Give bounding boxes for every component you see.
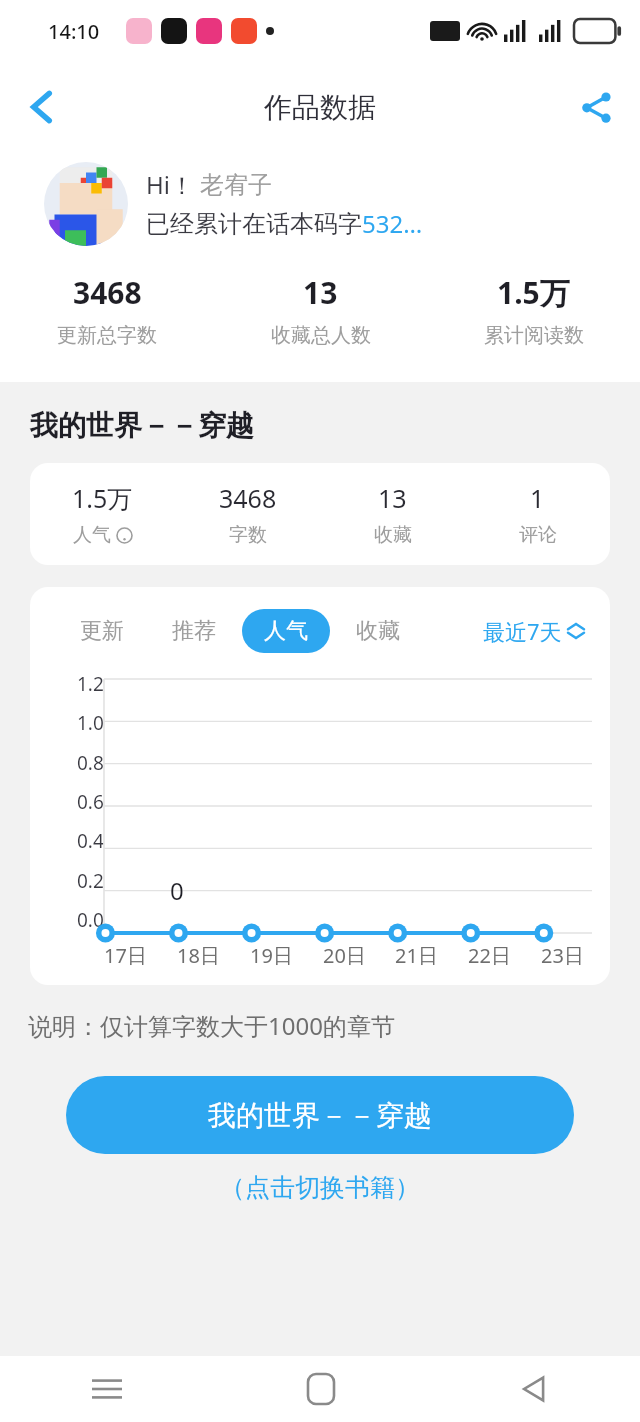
staticText: 0 bbox=[170, 874, 184, 907]
button[interactable]: Back bbox=[427, 1356, 640, 1422]
staticText: 532… bbox=[362, 207, 423, 240]
button[interactable]: 最近7天 bbox=[479, 612, 588, 650]
staticText: 14:10 bbox=[48, 18, 100, 45]
button[interactable]: Share bbox=[566, 77, 626, 137]
staticText: 3468 bbox=[73, 272, 142, 313]
staticText: 0.0 bbox=[77, 907, 104, 933]
staticText: 0.4 bbox=[77, 828, 104, 854]
staticText: 23日 bbox=[541, 942, 584, 969]
staticText: 我的世界－－穿越 bbox=[30, 408, 254, 443]
staticText: 3468 bbox=[219, 481, 277, 515]
staticText: 收藏总人数 bbox=[271, 323, 371, 348]
staticText: 1.5万 bbox=[497, 272, 570, 313]
staticText: 作品数据 bbox=[264, 90, 376, 125]
button[interactable]: 推荐 bbox=[162, 609, 226, 653]
button[interactable]: Back bbox=[12, 77, 72, 137]
staticText: 20日 bbox=[323, 942, 366, 969]
button[interactable]: （点击切换书籍） bbox=[0, 1172, 640, 1203]
staticText: Hi！ bbox=[146, 168, 194, 201]
staticText: 最近7天 bbox=[483, 616, 562, 646]
staticText: 累计阅读数 bbox=[484, 323, 584, 348]
staticText: 人气 bbox=[264, 617, 308, 645]
button[interactable]: 人气 bbox=[242, 609, 330, 653]
staticText: 字数 bbox=[229, 523, 267, 547]
staticText: 1.5万 bbox=[72, 481, 133, 515]
button[interactable]: 1.5万 bbox=[30, 463, 610, 565]
staticText: 13 bbox=[378, 481, 407, 515]
button[interactable]: Home bbox=[214, 1356, 427, 1422]
staticText: 21日 bbox=[395, 942, 438, 969]
staticText: 收藏 bbox=[356, 617, 400, 645]
staticText: 13 bbox=[303, 272, 338, 313]
staticText: 推荐 bbox=[172, 617, 216, 645]
staticText: 1 bbox=[530, 481, 545, 515]
staticText: 更新总字数 bbox=[57, 323, 157, 348]
staticText: 18日 bbox=[177, 942, 220, 969]
staticText: 0.2 bbox=[77, 868, 104, 894]
staticText: 收藏 bbox=[374, 523, 412, 547]
staticText: 1.0 bbox=[77, 710, 104, 736]
staticText: 老宥子 bbox=[200, 170, 272, 200]
button[interactable]: 更新 bbox=[70, 609, 134, 653]
staticText: 说明：仅计算字数大于1000的章节 bbox=[28, 1009, 640, 1042]
staticText: 19日 bbox=[250, 942, 293, 969]
staticText: 已经累计在话本码字 bbox=[146, 209, 362, 239]
staticText: 22日 bbox=[468, 942, 511, 969]
staticText: 17日 bbox=[104, 942, 147, 969]
button[interactable]: Recents bbox=[0, 1356, 214, 1422]
button[interactable]: 我的世界－－穿越 bbox=[66, 1076, 574, 1154]
button[interactable]: 收藏 bbox=[346, 609, 410, 653]
staticText: 更新 bbox=[80, 617, 124, 645]
staticText: 0.6 bbox=[77, 789, 104, 815]
staticText: 我的世界－－穿越 bbox=[208, 1098, 432, 1133]
staticText: 人气 bbox=[73, 523, 111, 547]
staticText: 0.8 bbox=[77, 750, 104, 776]
staticText: 评论 bbox=[519, 523, 557, 547]
staticText: 1.2 bbox=[77, 671, 104, 697]
staticText: （点击切换书籍） bbox=[220, 1172, 420, 1203]
